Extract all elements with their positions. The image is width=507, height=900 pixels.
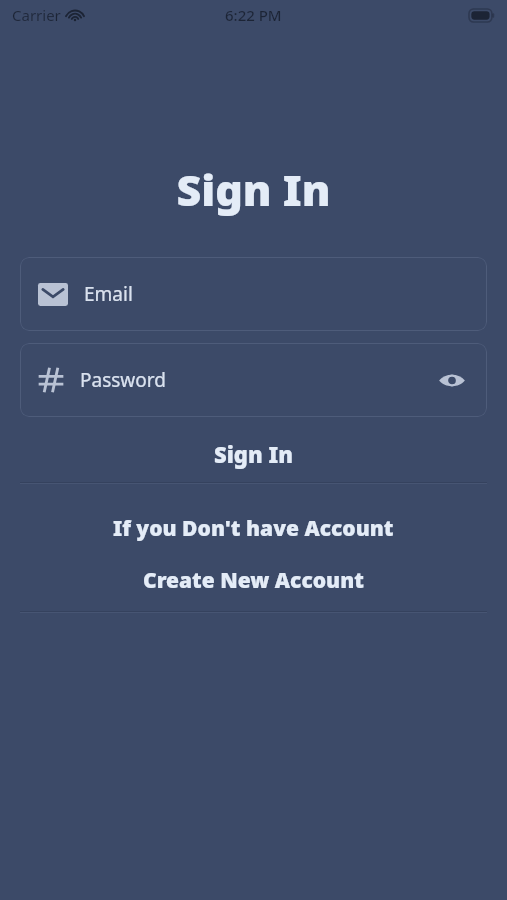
- staticText: Carrier: [12, 5, 61, 25]
- staticText: Sign In: [0, 160, 507, 219]
- staticText: Create New Account: [143, 566, 364, 595]
- button[interactable]: Create New Account: [20, 562, 487, 598]
- staticText: Email: [84, 281, 133, 307]
- staticText: 6:22 PM: [225, 5, 282, 25]
- button[interactable]: Show password: [435, 363, 469, 397]
- button[interactable]: Sign In: [20, 433, 487, 475]
- button[interactable]: If you Don't have Account: [20, 510, 487, 546]
- staticText: If you Don't have Account: [113, 514, 394, 543]
- button[interactable]: Email: [20, 257, 487, 331]
- staticText: Sign In: [214, 439, 293, 469]
- button[interactable]: Password: [20, 343, 487, 417]
- staticText: Password: [80, 367, 166, 393]
